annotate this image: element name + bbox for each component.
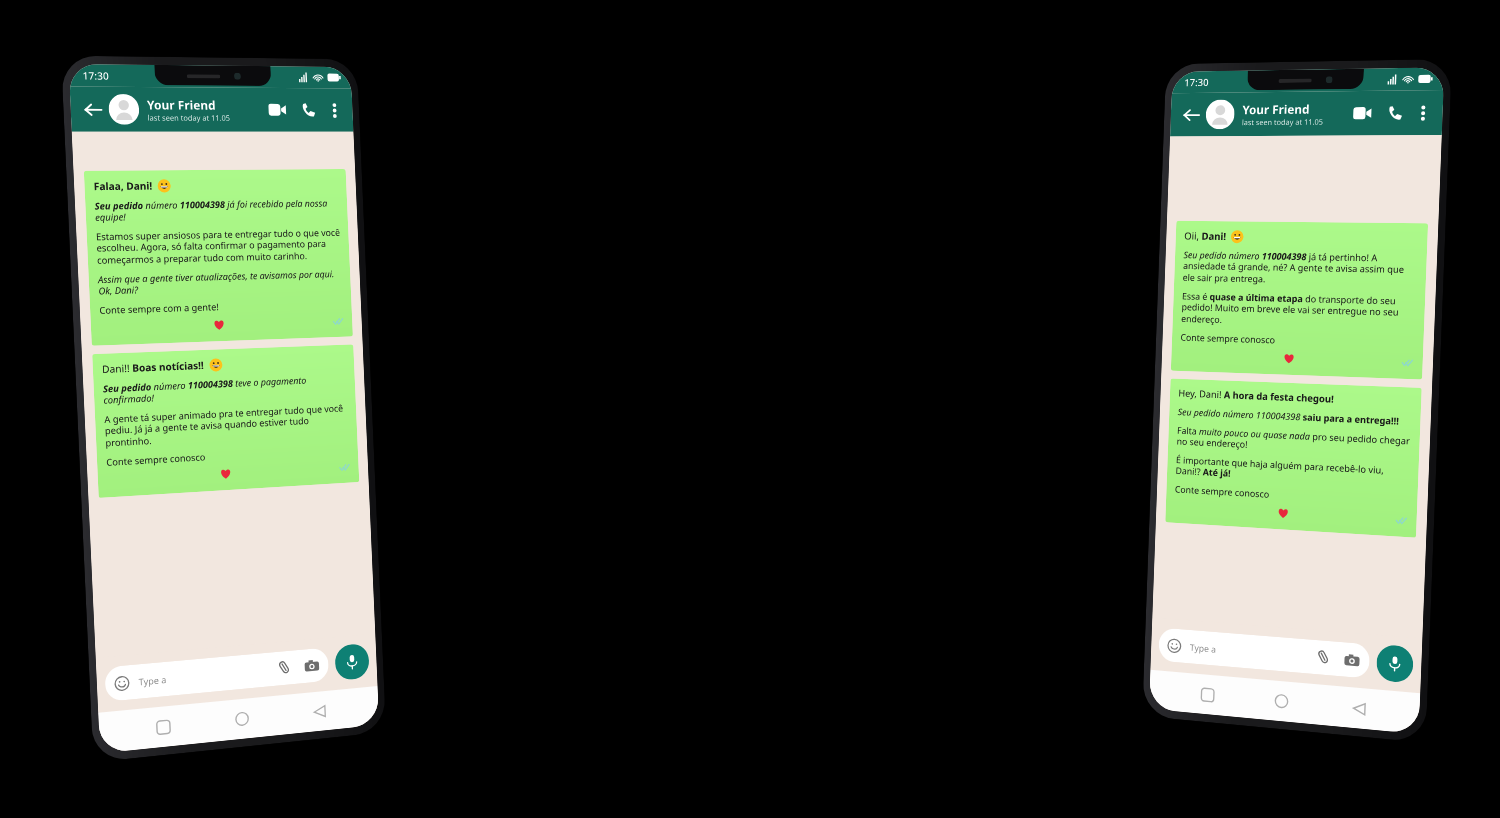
button[interactable]: Home — [1264, 683, 1299, 720]
staticText: Conte sempre conosco — [1175, 483, 1270, 501]
staticText: Falaa, Dani! — [93, 178, 153, 193]
staticText: Assim que a gente tiver atualizações, te… — [98, 267, 344, 297]
staticText: Conte sempre com a gente! — [99, 300, 219, 317]
staticText: Your Friend — [1242, 101, 1310, 117]
button[interactable]: Home — [225, 700, 259, 737]
staticText: Your Friend — [147, 96, 216, 113]
button[interactable]: Attach — [1314, 648, 1333, 667]
button[interactable]: Your Friend — [1242, 100, 1350, 127]
button[interactable]: More options — [324, 99, 345, 121]
button[interactable]: Profile photo — [1205, 99, 1235, 129]
button[interactable]: Recents — [1190, 676, 1224, 713]
staticText: 17:30 — [1184, 75, 1209, 89]
button[interactable]: Profile photo — [108, 94, 140, 125]
staticText: Dani!! Boas notícias!! — [102, 358, 205, 376]
staticText: 17:30 — [82, 68, 109, 83]
staticText: Type a — [138, 673, 167, 688]
button[interactable]: Oii, Dani! — [1171, 221, 1428, 379]
button[interactable]: Video call — [1349, 100, 1376, 126]
button[interactable]: Falaa, Dani! — [84, 169, 353, 346]
staticText: Seu pedido número 110004398 já foi receb… — [94, 196, 341, 224]
button[interactable]: Your Friend — [147, 96, 265, 123]
button[interactable]: Voice call — [1381, 100, 1408, 126]
staticText: Hey, Dani! A hora da festa chegou! — [1178, 387, 1335, 406]
button[interactable]: Video call — [264, 97, 290, 123]
staticText: Seu pedido número 110004398 teve o pagam… — [103, 372, 349, 407]
staticText: Falta muito pouco ou quase nada pro seu … — [1176, 424, 1413, 459]
staticText: Type a — [1190, 641, 1217, 655]
button[interactable]: Camera — [1342, 650, 1361, 670]
button[interactable]: Back — [1178, 102, 1203, 127]
button[interactable]: Recents — [145, 708, 181, 746]
staticText: last seen today at 11.05 — [1242, 117, 1323, 127]
staticText: Essa é quase a última etapa do transport… — [1181, 289, 1418, 331]
staticText: Conte sempre conosco — [1180, 331, 1276, 346]
staticText: Seu pedido número 110004398 saiu para a … — [1177, 405, 1399, 428]
button[interactable]: Type a — [104, 647, 329, 702]
button[interactable]: Camera — [302, 656, 320, 675]
button[interactable]: Dani!! Boas notícias!! — [92, 344, 359, 498]
button[interactable]: Voice message — [1376, 644, 1414, 683]
button[interactable]: Back — [302, 693, 336, 730]
staticText: A gente tá super animado pra te entregar… — [104, 401, 351, 449]
staticText: Oii, Dani! — [1184, 229, 1226, 243]
staticText: Conte sempre conosco — [106, 450, 206, 469]
button[interactable]: Voice call — [295, 97, 321, 123]
button[interactable]: Back — [78, 96, 106, 123]
staticText: last seen today at 11.05 — [147, 112, 230, 123]
button[interactable]: Back — [1341, 690, 1376, 727]
button[interactable]: Hey, Dani! A hora da festa chegou! — [1165, 378, 1422, 538]
button[interactable]: More options — [1411, 101, 1435, 124]
button[interactable]: Voice message — [334, 643, 370, 681]
button[interactable]: Type a — [1158, 627, 1370, 679]
staticText: É importante que haja alguém para recebê… — [1175, 453, 1412, 489]
button[interactable]: Attach — [275, 658, 294, 678]
staticText: Seu pedido número 110004398 já tá pertin… — [1182, 248, 1420, 288]
staticText: Estamos super ansiosos para te entregar … — [96, 226, 343, 267]
